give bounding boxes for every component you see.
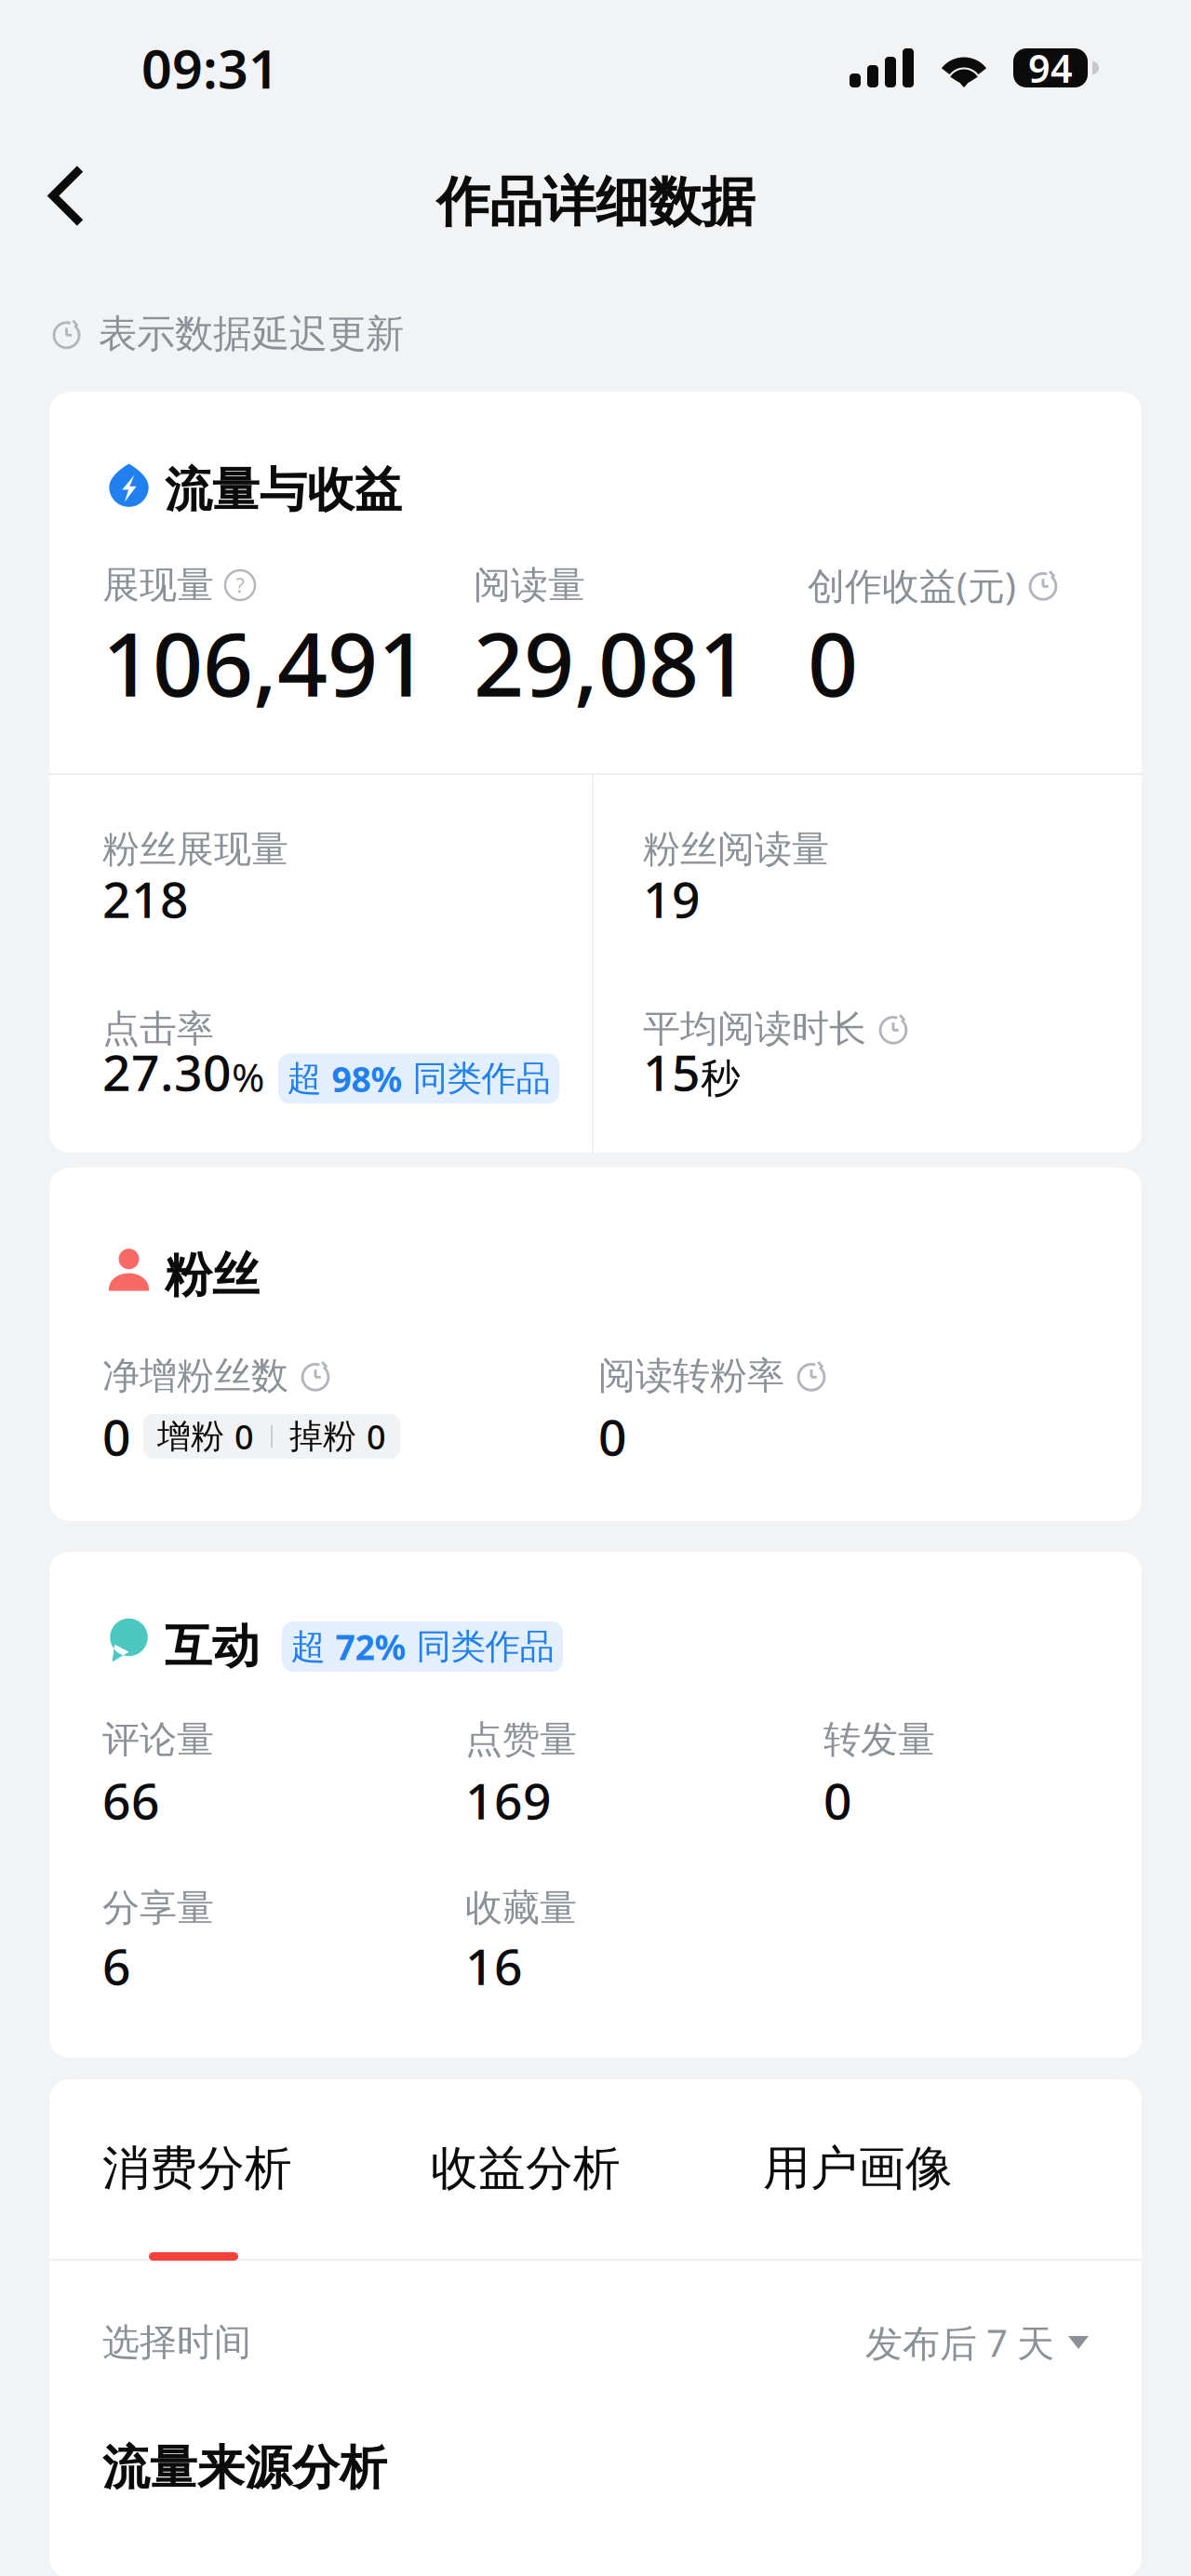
staticText: 0 xyxy=(598,1403,627,1469)
staticText: 19 xyxy=(643,866,701,932)
button[interactable]: Back xyxy=(0,142,112,250)
staticText: 同类作品 xyxy=(402,1057,550,1100)
staticText: 阅读转粉率 xyxy=(598,1353,784,1399)
staticText: 流量与收益 xyxy=(165,461,402,519)
staticText: 72% xyxy=(335,1624,406,1670)
staticText: 6 xyxy=(102,1933,131,1999)
staticText: 218 xyxy=(102,866,189,932)
staticText: 29,081 xyxy=(474,604,749,721)
staticText: 0 xyxy=(808,604,858,721)
staticText: 169 xyxy=(465,1767,552,1833)
staticText: 发布后 7 天 xyxy=(865,2318,1054,2367)
staticText: 27.30 xyxy=(102,1039,232,1105)
staticText: 平均阅读时长 xyxy=(643,1006,866,1052)
button[interactable]: 用户画像 xyxy=(763,2142,953,2195)
staticText: 0 xyxy=(367,1414,386,1459)
staticText: 评论量 xyxy=(102,1717,214,1762)
button[interactable]: 收益分析 xyxy=(431,2142,621,2195)
staticText: 粉丝展现量 xyxy=(102,826,288,872)
staticText: 增粉 xyxy=(157,1416,234,1457)
staticText: 超 xyxy=(291,1625,335,1668)
staticText: 09:31 xyxy=(141,32,279,103)
staticText: 创作收益(元) xyxy=(808,560,1016,610)
staticText: 消费分析 xyxy=(102,2140,292,2197)
staticText: 粉丝阅读量 xyxy=(643,826,829,872)
staticText: 106,491 xyxy=(102,604,428,721)
staticText: 0 xyxy=(102,1403,131,1469)
staticText: 阅读量 xyxy=(474,562,585,608)
staticText: 收藏量 xyxy=(465,1885,577,1931)
staticText: 点击率 xyxy=(102,1006,214,1052)
staticText: 秒 xyxy=(701,1054,741,1103)
staticText: 0 xyxy=(234,1414,254,1459)
staticText: 流量来源分析 xyxy=(102,2439,387,2497)
staticText: 超 xyxy=(287,1057,332,1100)
staticText: 作品详细数据 xyxy=(436,170,755,235)
staticText: ? xyxy=(236,572,244,598)
staticText: 15 xyxy=(643,1039,701,1105)
staticText: 收益分析 xyxy=(431,2140,621,2197)
staticText: 掉粉 xyxy=(289,1416,367,1457)
staticText: 转发量 xyxy=(823,1717,935,1762)
staticText: 0 xyxy=(823,1767,852,1833)
button[interactable]: 发布后 7 天 xyxy=(865,2324,1089,2361)
staticText: 分享量 xyxy=(102,1885,214,1931)
staticText: 展现量 xyxy=(102,562,214,608)
staticText: 66 xyxy=(102,1767,160,1833)
staticText: 互动 xyxy=(165,1618,260,1676)
staticText: 同类作品 xyxy=(406,1625,554,1668)
staticText: 表示数据延迟更新 xyxy=(99,310,404,358)
staticText: % xyxy=(232,1050,264,1103)
staticText: 16 xyxy=(465,1933,523,1999)
staticText: 94 xyxy=(1028,42,1073,93)
staticText: 净增粉丝数 xyxy=(102,1353,288,1399)
staticText: 点赞量 xyxy=(465,1717,577,1762)
button[interactable]: 消费分析 xyxy=(102,2142,292,2195)
staticText: 用户画像 xyxy=(763,2140,953,2197)
staticText: 98% xyxy=(332,1056,402,1102)
staticText: 粉丝 xyxy=(165,1247,260,1304)
staticText: 选择时间 xyxy=(102,2320,251,2365)
